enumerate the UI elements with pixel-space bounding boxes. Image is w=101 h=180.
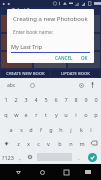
button[interactable]: Voice input (88, 81, 96, 89)
staticText: z (17, 140, 20, 147)
button[interactable]: 4 (31, 92, 41, 107)
button[interactable]: ?123 (0, 150, 15, 164)
button[interactable]: . (74, 150, 84, 164)
button[interactable]: r (31, 107, 41, 122)
button[interactable]: o (81, 107, 91, 122)
button[interactable]: z (13, 136, 23, 150)
button[interactable] (1, 52, 32, 68)
button[interactable]: l (86, 122, 96, 136)
button[interactable]: Hide keyboard (80, 164, 96, 180)
button[interactable]: v (43, 136, 54, 150)
staticText: 6 (54, 96, 58, 103)
button[interactable] (34, 52, 66, 68)
staticText: 1 (4, 96, 8, 103)
staticText: i (75, 111, 77, 118)
button[interactable]: c (33, 136, 43, 150)
button[interactable] (68, 34, 100, 50)
button[interactable]: f (36, 122, 46, 136)
staticText: Enter book name: (13, 29, 53, 36)
staticText: 7 (64, 96, 68, 103)
staticText: 4 (34, 96, 38, 103)
button[interactable]: y (51, 107, 61, 122)
button[interactable]: k (76, 122, 86, 136)
button[interactable]: UPDATE BOOK (51, 70, 100, 77)
button[interactable]: u (61, 107, 71, 122)
button[interactable]: Enter (84, 150, 101, 164)
staticText: Select Images (12, 7, 45, 14)
button[interactable]: e (21, 107, 31, 122)
staticText: h (59, 126, 63, 133)
button[interactable]: x (23, 136, 33, 150)
staticText: 8 (74, 96, 78, 103)
button[interactable]: b (54, 136, 65, 150)
staticText: x (27, 140, 30, 147)
staticText: CANCEL (55, 55, 73, 61)
staticText: , (19, 154, 21, 161)
button[interactable]: p (91, 107, 101, 122)
button[interactable]: Settings (77, 81, 85, 89)
button[interactable]: j (66, 122, 76, 136)
button[interactable]: Backspace (87, 136, 101, 150)
staticText: . (78, 154, 80, 161)
button[interactable]: t (41, 107, 51, 122)
button[interactable]: q (0, 107, 11, 122)
staticText: b (58, 140, 62, 147)
button[interactable]: abc (5, 80, 18, 91)
button[interactable] (68, 52, 100, 68)
button[interactable]: 2 (11, 92, 21, 107)
button[interactable]: Change language (25, 150, 35, 164)
button[interactable]: n (65, 136, 76, 150)
button[interactable]: Back (10, 164, 26, 180)
button[interactable]: 8 (71, 92, 81, 107)
button[interactable] (1, 34, 32, 50)
button[interactable]: Sticker (28, 81, 36, 89)
staticText: n (69, 140, 73, 147)
button[interactable] (68, 15, 100, 32)
staticText: My Last Trip (11, 43, 43, 50)
staticText: j (70, 126, 72, 133)
button[interactable] (1, 15, 32, 32)
staticText: 0 (94, 96, 98, 103)
staticText: t (45, 111, 47, 118)
staticText: d (29, 126, 33, 133)
button[interactable]: i (71, 107, 81, 122)
staticText: CREATE NEW BOOK (6, 71, 45, 77)
staticText: w (14, 111, 19, 118)
staticText: e (24, 111, 28, 118)
button[interactable]: Home (34, 164, 50, 180)
button[interactable] (34, 34, 66, 50)
staticText: 9 (84, 96, 88, 103)
button[interactable]: a (6, 122, 16, 136)
staticText: k (80, 126, 83, 133)
staticText: m (79, 140, 85, 147)
button[interactable]: 1 (0, 92, 11, 107)
button[interactable]: CANCEL (53, 54, 75, 62)
button[interactable]: 7 (61, 92, 71, 107)
button[interactable]: h (56, 122, 66, 136)
staticText: a (9, 126, 13, 133)
button[interactable]: CREATE NEW BOOK (1, 70, 49, 77)
button[interactable]: Shift (0, 136, 13, 150)
button[interactable]: , (15, 150, 25, 164)
button[interactable]: 9 (81, 92, 91, 107)
button[interactable]: g (46, 122, 56, 136)
staticText: c (37, 140, 40, 147)
staticText: 2 (14, 96, 18, 103)
button[interactable] (34, 15, 66, 32)
button[interactable]: 6 (51, 92, 61, 107)
button[interactable]: m (76, 136, 87, 150)
button[interactable]: OK (79, 54, 90, 62)
button[interactable]: Recents (58, 164, 74, 180)
button[interactable]: 3 (21, 92, 31, 107)
button[interactable]: 5 (41, 92, 51, 107)
button[interactable]: d (26, 122, 36, 136)
button[interactable]: w (11, 107, 21, 122)
staticText: UPDATE BOOK (61, 71, 90, 77)
staticText: ?123 (2, 154, 14, 161)
button[interactable]: s (16, 122, 26, 136)
button[interactable]: 0 (91, 92, 101, 107)
staticText: q (4, 111, 8, 118)
staticText: o (84, 111, 88, 118)
staticText: p (94, 111, 98, 118)
